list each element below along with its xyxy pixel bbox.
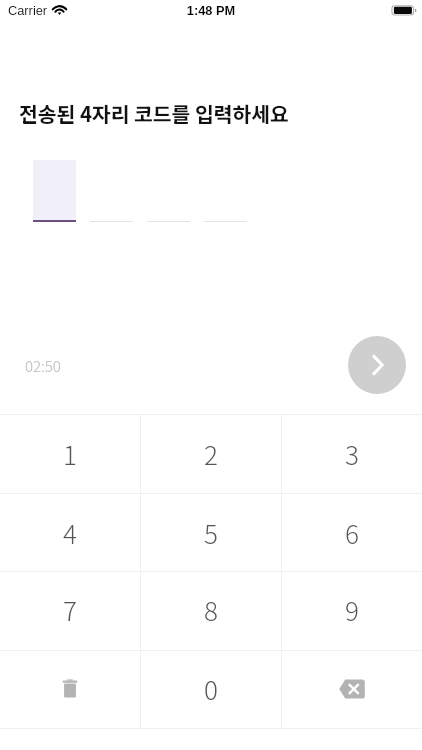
button[interactable]: 6 [282, 493, 422, 572]
staticText: 4 [63, 514, 77, 552]
button[interactable]: 4 [0, 493, 140, 572]
button[interactable]: 5 [141, 493, 281, 572]
button[interactable]: 8 [141, 571, 281, 650]
button[interactable] [147, 160, 190, 222]
button[interactable] [33, 160, 76, 222]
staticText: 1 [63, 435, 77, 473]
staticText: 3 [345, 435, 359, 473]
button[interactable] [204, 160, 247, 222]
button[interactable]: 1 [0, 414, 140, 493]
staticText: Carrier [8, 3, 48, 17]
button[interactable]: 3 [282, 414, 422, 493]
button[interactable] [90, 160, 133, 222]
staticText: 6 [345, 514, 359, 552]
staticText: 5 [204, 514, 218, 552]
staticText: 8 [204, 591, 218, 629]
staticText: 02:50 [25, 355, 61, 377]
button[interactable]: 7 [0, 571, 140, 650]
staticText: 7 [63, 591, 77, 629]
button[interactable]: 2 [141, 414, 281, 493]
staticText: 전송된 4자리 코드를 입력하세요 [19, 98, 289, 128]
button[interactable]: 9 [282, 571, 422, 650]
button[interactable]: Backspace [282, 650, 422, 729]
staticText: 9 [345, 591, 359, 629]
button[interactable]: Next [348, 336, 406, 394]
staticText: 0 [204, 670, 218, 708]
staticText: 2 [204, 435, 218, 473]
staticText: 1:48 PM [0, 3, 422, 17]
button[interactable]: 0 [141, 650, 281, 729]
button[interactable]: Clear all [0, 650, 140, 729]
